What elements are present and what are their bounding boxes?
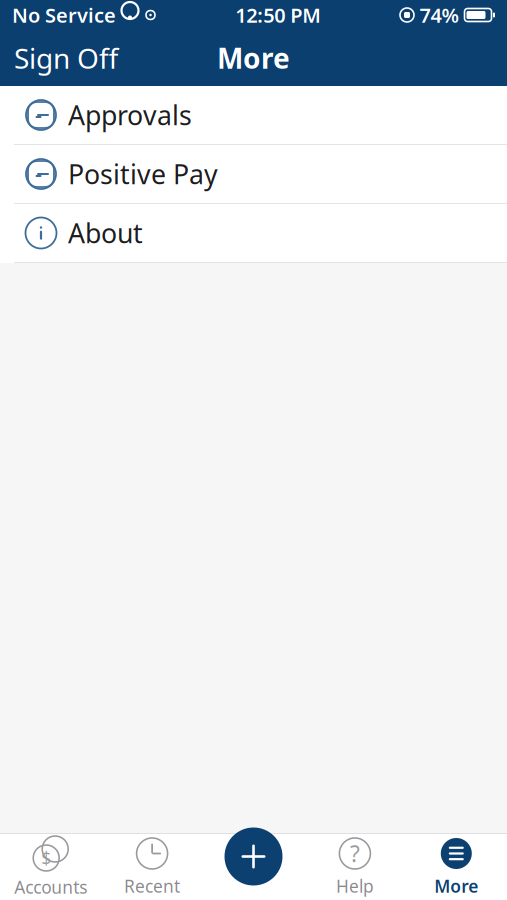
staticText: About (68, 215, 143, 251)
button[interactable]: $ (0, 834, 101, 900)
staticText: $ (41, 846, 51, 869)
button[interactable]: Positive Pay (0, 145, 507, 204)
button[interactable]: New transaction (222, 825, 284, 887)
staticText: More (217, 39, 290, 77)
staticText: More (434, 874, 478, 897)
button[interactable]: About (0, 204, 507, 263)
staticText: Sign Off (14, 39, 118, 77)
button[interactable]: Sign Off (0, 31, 132, 85)
button[interactable]: More (406, 834, 507, 900)
staticText: No Service (12, 2, 116, 28)
staticText: 12:50 PM (235, 2, 321, 28)
button[interactable]: Recent (101, 834, 203, 900)
staticText: 74% (419, 2, 459, 28)
staticText: Recent (124, 874, 180, 897)
button[interactable]: ? (304, 834, 406, 900)
button[interactable]: Approvals (0, 86, 507, 145)
staticText: ? (350, 838, 360, 868)
staticText: Accounts (14, 875, 87, 898)
staticText: Help (336, 874, 374, 897)
staticText: Positive Pay (68, 156, 218, 192)
staticText: Approvals (68, 97, 192, 133)
